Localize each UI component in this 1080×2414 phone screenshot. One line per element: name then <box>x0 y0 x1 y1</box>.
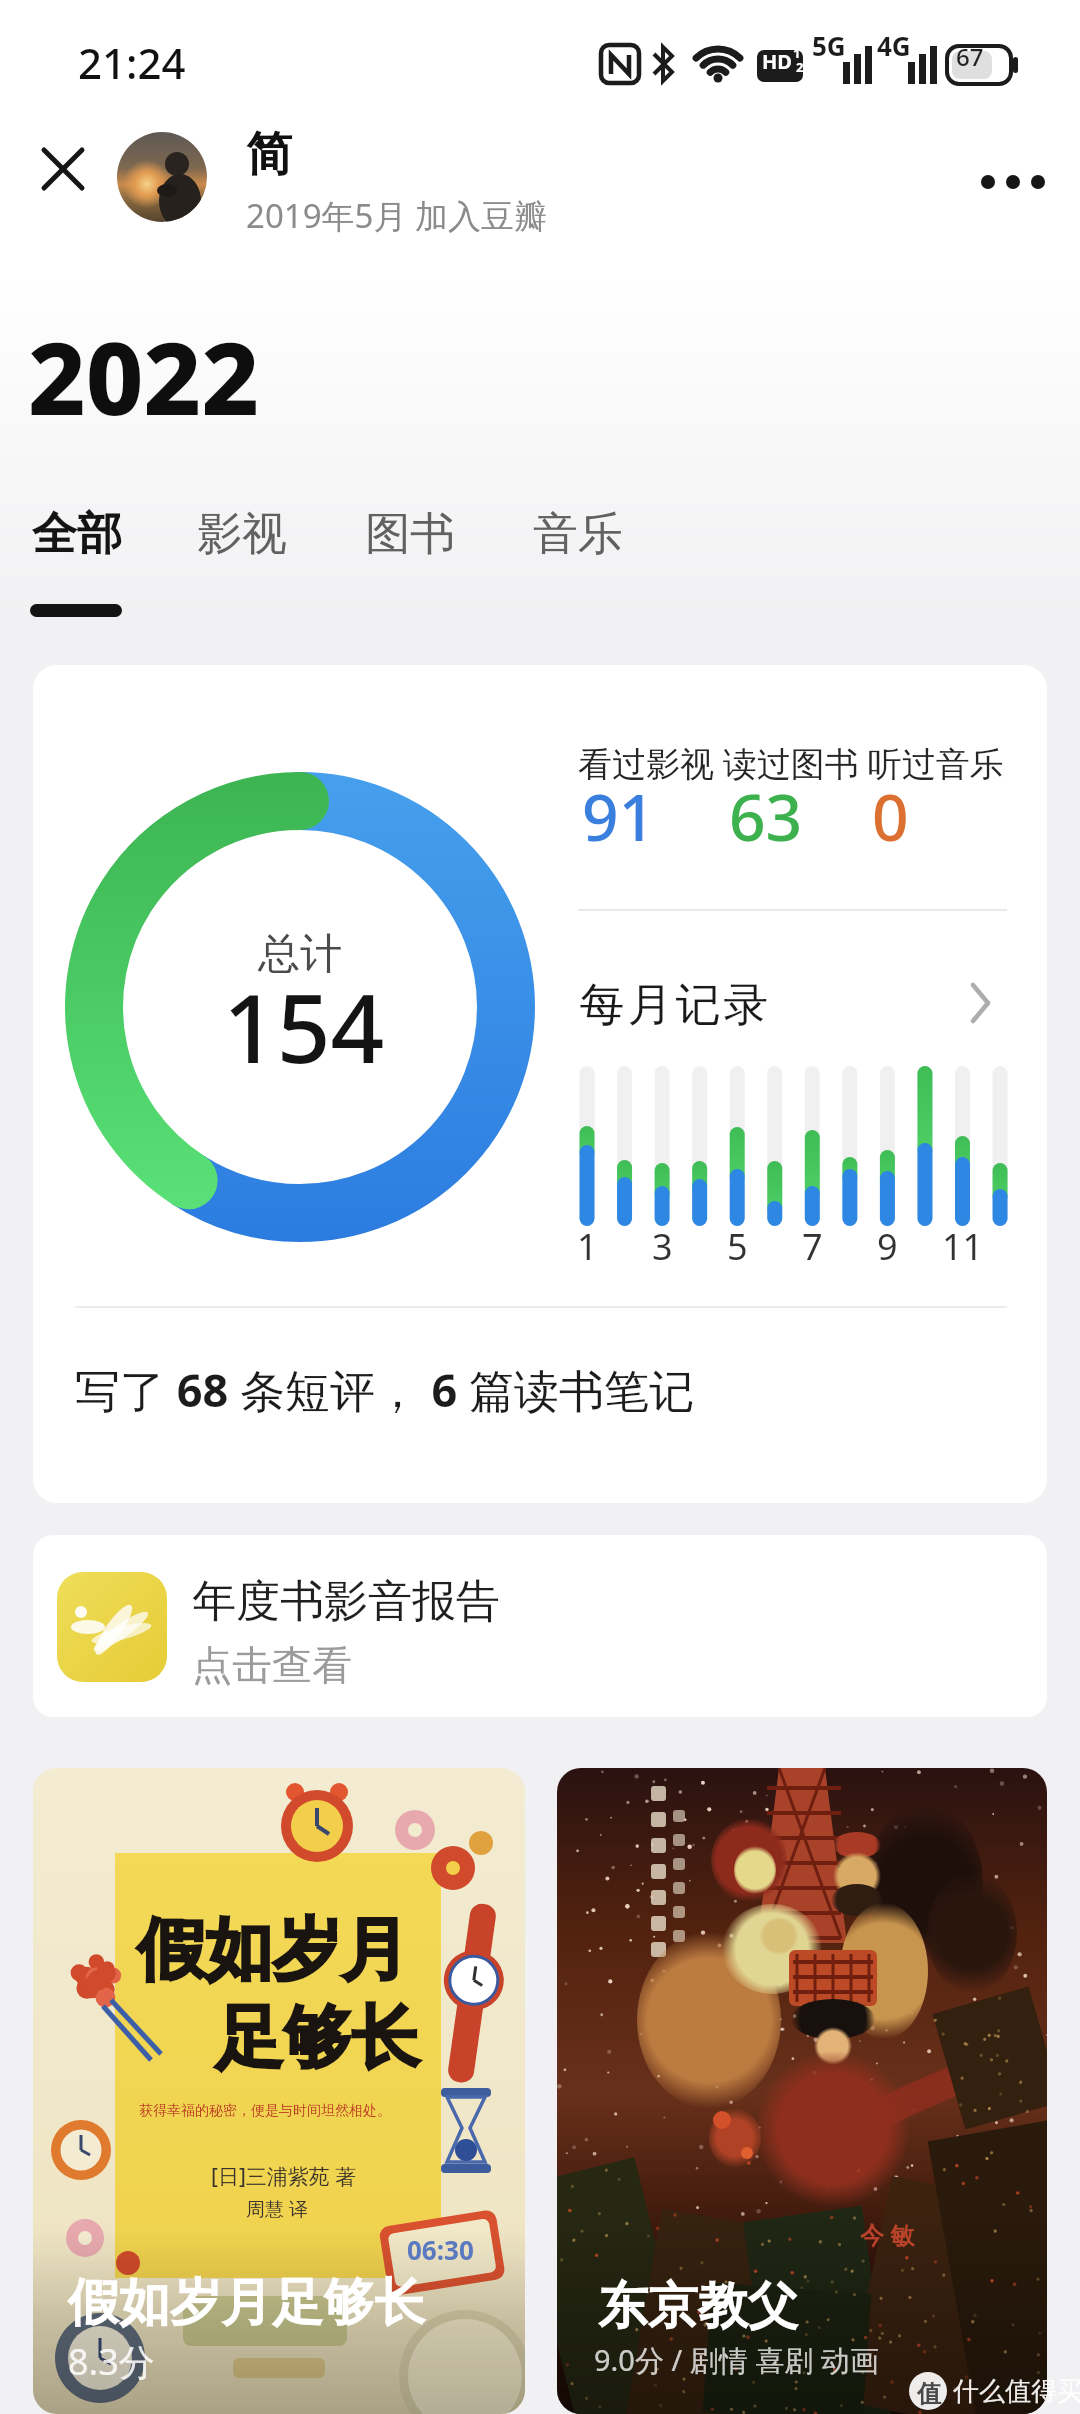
staticText: 3 <box>652 1222 673 1271</box>
staticText: 音乐 <box>533 506 623 563</box>
staticText: 1 <box>577 1222 598 1271</box>
staticText: 11 <box>942 1222 984 1271</box>
staticText: 今 敏 <box>860 2218 915 2251</box>
button[interactable]: 年度书影音报告 <box>33 1535 1047 1717</box>
staticText: 5G <box>812 28 846 63</box>
staticText: 91 <box>582 773 656 860</box>
staticText: 总计 <box>258 928 342 981</box>
staticText: 值 <box>917 2379 941 2409</box>
staticText: 东京教父 <box>598 2275 798 2338</box>
staticText: 影视 <box>197 506 287 563</box>
staticText: 2 <box>796 58 804 76</box>
staticText: 5 <box>727 1222 748 1271</box>
staticText: 06:30 <box>407 2232 474 2267</box>
button[interactable]: 每月记录 <box>568 955 1008 1045</box>
button[interactable]: 图书 <box>345 486 477 586</box>
button[interactable] <box>117 132 207 222</box>
staticText: 2022 <box>28 308 260 444</box>
staticText: 获得幸福的秘密，便是与时间坦然相处。 <box>139 2102 391 2120</box>
staticText: 4G <box>877 28 911 63</box>
staticText: 每月记录 <box>578 977 770 1034</box>
staticText: 7 <box>802 1222 823 1271</box>
staticText: 67 <box>956 40 984 73</box>
staticText: 2019年5月 加入豆瓣 <box>246 193 547 238</box>
staticText: 21:24 <box>78 34 186 91</box>
staticText: 简 <box>246 126 292 184</box>
staticText: 63 <box>729 773 803 860</box>
staticText: 假如岁月 <box>137 1908 409 1994</box>
button[interactable] <box>23 129 103 209</box>
button[interactable]: 假如岁月 <box>33 1768 525 2414</box>
staticText: 9 <box>877 1222 898 1271</box>
staticText: HD <box>762 48 792 75</box>
staticText: 周慧 译 <box>246 2196 308 2222</box>
button[interactable]: 今 敏 <box>557 1768 1047 2414</box>
staticText: 1 <box>793 44 801 62</box>
button[interactable]: 影视 <box>177 486 309 586</box>
button[interactable] <box>960 150 1060 210</box>
staticText: 154 <box>223 963 385 1091</box>
button[interactable]: 音乐 <box>513 486 645 586</box>
staticText: 8.3分 <box>68 2337 155 2386</box>
staticText: 看过影视 读过图书 听过音乐 <box>578 740 1004 786</box>
staticText: 假如岁月足够长 <box>68 2271 425 2335</box>
staticText: 图书 <box>365 506 455 563</box>
staticText: 9.0分 / 剧情 喜剧 动画 <box>594 2340 879 2380</box>
staticText: 什么值得买 <box>953 2375 1080 2408</box>
staticText: 全部 <box>32 506 122 563</box>
staticText: 年度书影音报告 <box>192 1574 500 1629</box>
staticText: 点击查看 <box>192 1640 352 1690</box>
staticText: 写了 68 条短评， 6 篇读书笔记 <box>75 1359 695 1420</box>
staticText: 0 <box>872 773 909 860</box>
button[interactable]: 全部 <box>10 486 150 586</box>
staticText: [日]三浦紫苑 著 <box>211 2162 357 2191</box>
staticText: 足够长 <box>215 1996 419 2082</box>
